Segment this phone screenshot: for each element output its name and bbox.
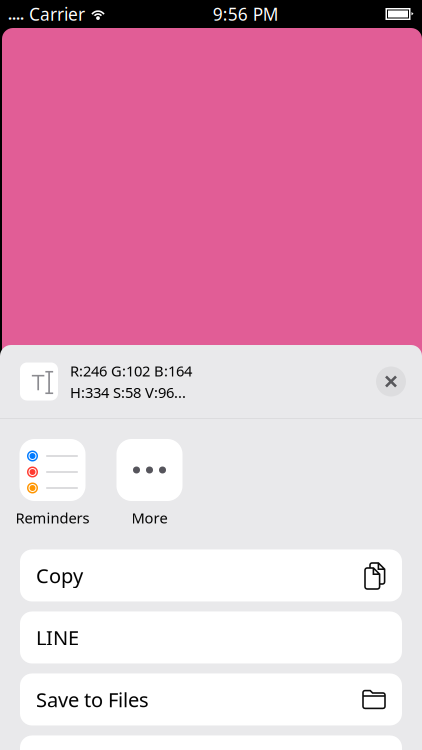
button[interactable]: Save to Files [20,673,402,725]
staticText: .... [8,4,24,24]
button[interactable]: Close [376,366,406,396]
staticText: R:246 G:102 B:164 [70,361,192,380]
staticText: 9:56 PM [213,2,279,25]
staticText: More [131,508,167,527]
button[interactable]: LINE [20,611,402,663]
button[interactable]: Copy [20,549,402,601]
staticText: Copy [36,562,83,589]
staticText: LINE [36,624,79,651]
button[interactable]: Reminders [4,439,101,527]
staticText: Carrier [24,2,90,25]
staticText: Save to Files [36,686,149,713]
staticText: Reminders [15,508,89,527]
button[interactable]: More [101,439,198,527]
staticText: H:334 S:58 V:96... [70,382,186,402]
